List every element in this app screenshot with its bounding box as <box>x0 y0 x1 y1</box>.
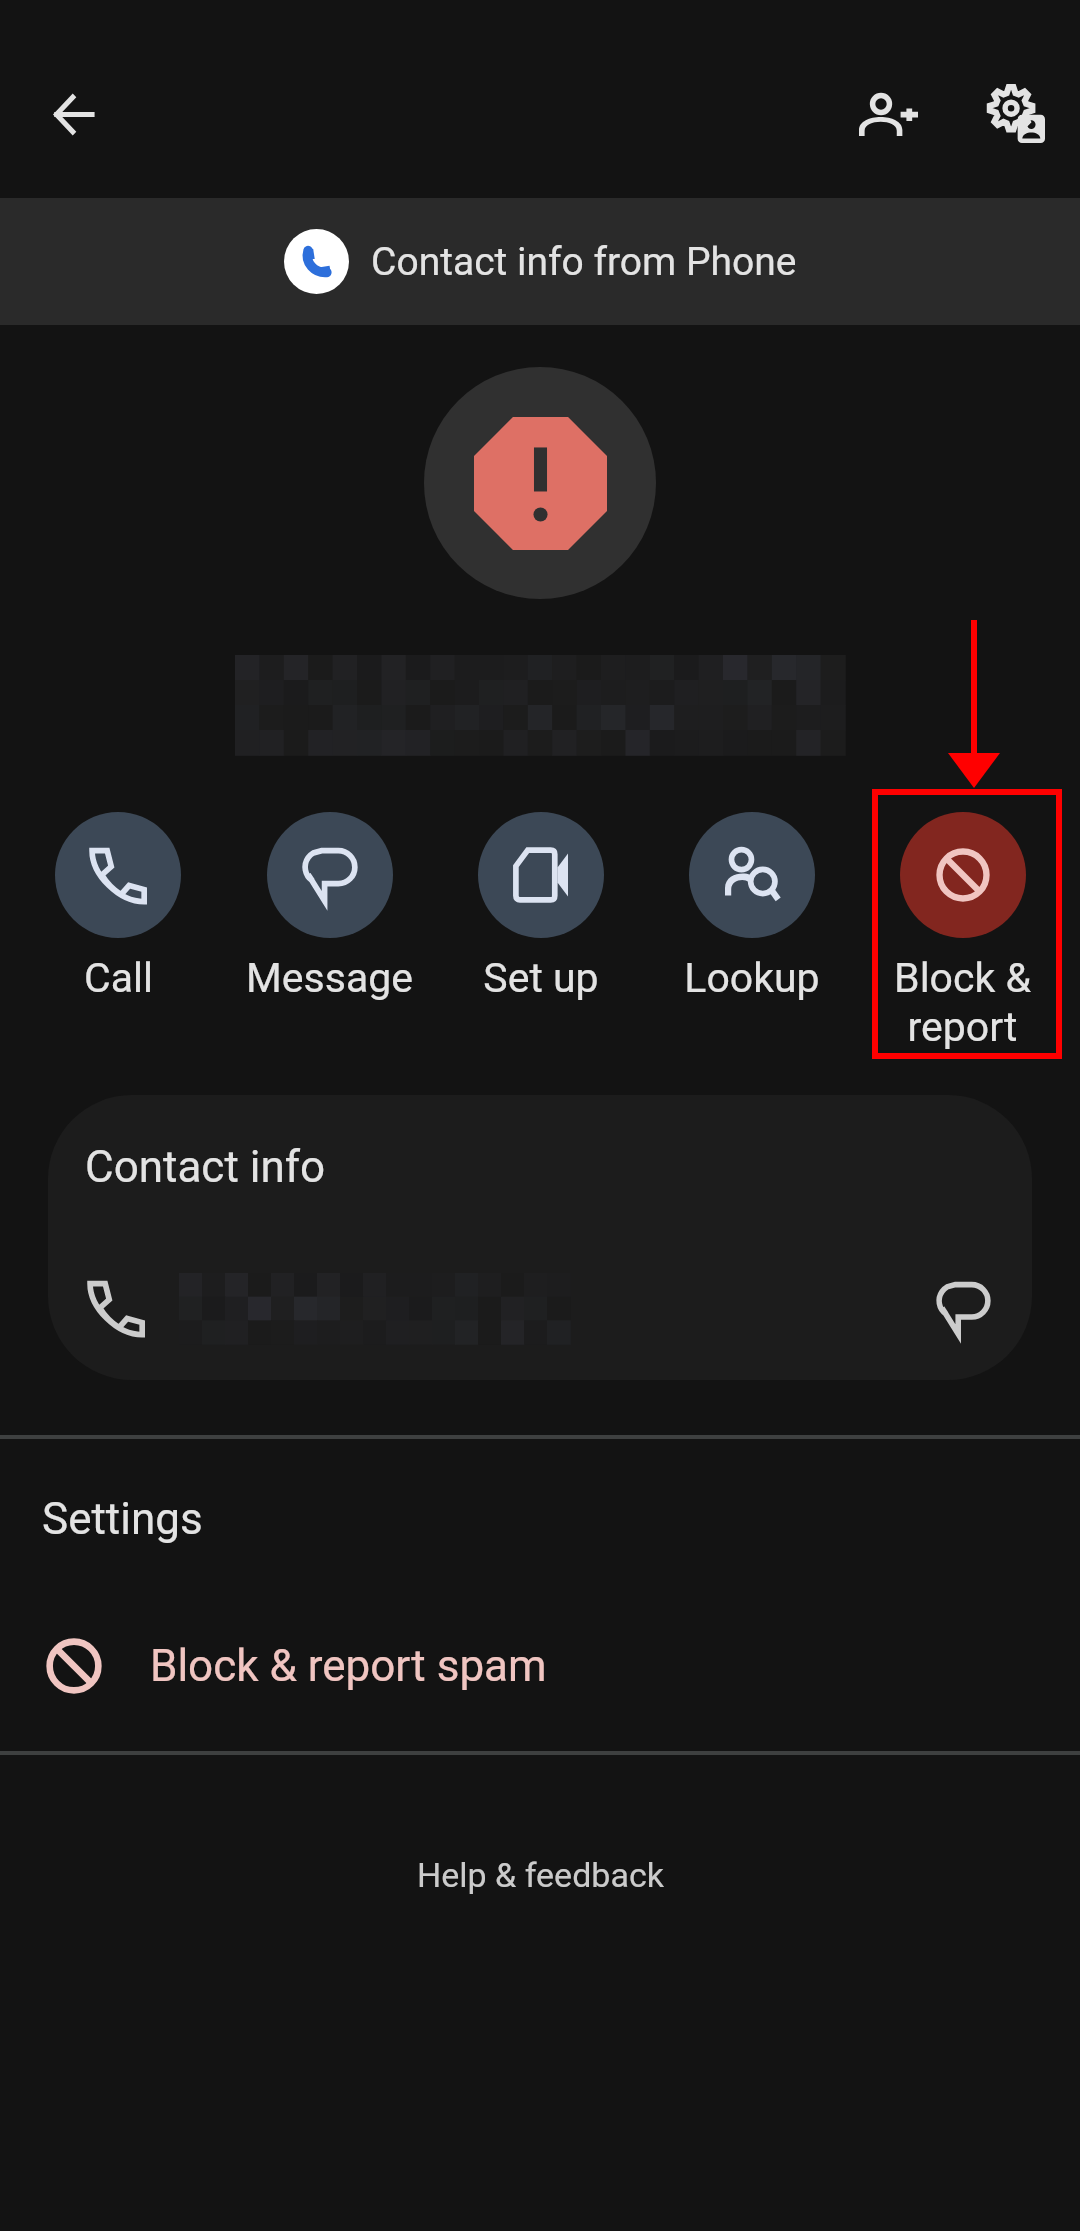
button[interactable]: Block & report spam <box>0 1600 1080 1732</box>
button[interactable]: Send message <box>895 1243 1032 1373</box>
button[interactable]: Help & feedback <box>393 1837 688 1913</box>
button[interactable]: Set up <box>435 812 646 1002</box>
button[interactable]: Contact info from Phone <box>0 198 1080 325</box>
staticText: Block & report <box>894 954 1031 1051</box>
staticText: Block & report spam <box>150 1640 547 1692</box>
button[interactable]: Add contact <box>840 66 936 162</box>
button[interactable]: Message <box>224 812 435 1002</box>
button[interactable]: Call this number <box>48 1243 895 1373</box>
staticText: Message <box>246 954 413 1002</box>
button[interactable]: Settings <box>968 66 1064 162</box>
staticText: Lookup <box>684 954 820 1002</box>
button[interactable]: Block & report <box>857 812 1068 1051</box>
staticText: Contact info from Phone <box>371 239 797 285</box>
staticText: Contact info <box>85 1141 326 1193</box>
staticText: Call <box>84 954 153 1002</box>
staticText: Set up <box>483 954 599 1002</box>
button[interactable]: Back <box>26 66 122 162</box>
button[interactable]: Lookup <box>646 812 857 1002</box>
button[interactable]: Call <box>12 812 224 1002</box>
staticText: Settings <box>42 1493 203 1545</box>
